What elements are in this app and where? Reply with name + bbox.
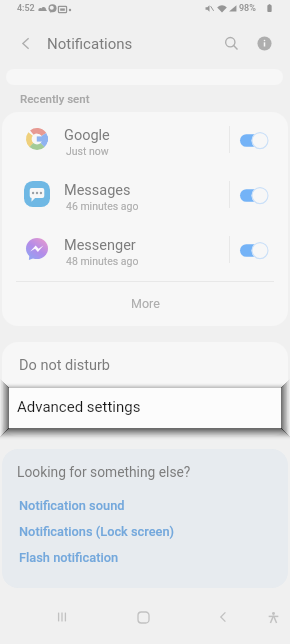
button[interactable]: Accessibility [258, 602, 288, 632]
button[interactable]: Search [216, 28, 247, 59]
staticText: 48 minutes ago [66, 255, 139, 267]
staticText: 4:52 [17, 3, 35, 14]
staticText: Messages [64, 182, 131, 199]
button[interactable]: Home [128, 602, 158, 632]
staticText: Notifications (Lock screen) [19, 524, 175, 539]
button[interactable]: Recent apps [47, 602, 77, 632]
button[interactable]: Notifications on [240, 187, 270, 205]
staticText: Advanced settings [17, 398, 141, 416]
button[interactable]: Do not disturb [2, 342, 288, 389]
button[interactable]: Google [2, 112, 288, 167]
staticText: Looking for something else? [17, 464, 191, 480]
button[interactable]: Flash notification [19, 550, 119, 565]
button[interactable]: Notifications (Lock screen) [19, 524, 175, 539]
button[interactable]: Messenger [2, 222, 288, 277]
staticText: More [131, 296, 160, 311]
button[interactable]: Advanced settings [2, 389, 288, 436]
staticText: Flash notification [19, 550, 119, 565]
button[interactable]: Notification sound [19, 498, 125, 513]
button[interactable]: More [2, 281, 288, 326]
staticText: Recently sent [20, 92, 90, 105]
button[interactable]: Messages [2, 167, 288, 222]
button[interactable]: About notifications [249, 28, 280, 59]
button[interactable]: Advanced settings [9, 388, 281, 428]
button[interactable]: Notifications on [240, 242, 270, 260]
staticText: Notifications [47, 35, 133, 53]
staticText: Do not disturb [19, 357, 110, 374]
button[interactable]: Notifications on [240, 132, 270, 150]
staticText: Notification sound [19, 498, 125, 513]
button[interactable]: Navigate up [10, 28, 41, 59]
staticText: 98% [239, 3, 256, 14]
staticText: 46 minutes ago [66, 200, 139, 212]
staticText: Messenger [64, 237, 136, 254]
button[interactable]: Back [208, 602, 238, 632]
staticText: Advanced settings [19, 404, 139, 421]
staticText: Just now [66, 145, 109, 157]
staticText: Google [64, 127, 110, 144]
